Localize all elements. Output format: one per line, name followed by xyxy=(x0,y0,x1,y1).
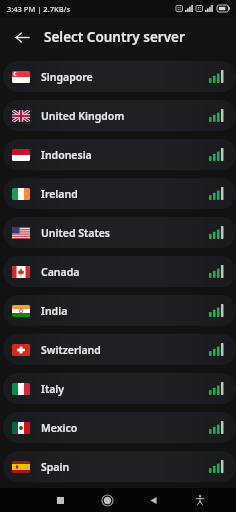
staticText: Ireland xyxy=(41,187,78,201)
button[interactable]: Spain xyxy=(3,451,236,482)
staticText: 3:43 PM | 2.7KB/s xyxy=(7,4,71,14)
button[interactable]: Accessibility xyxy=(190,490,210,510)
button[interactable]: Indonesia xyxy=(3,139,236,170)
staticText: Mexico xyxy=(41,421,78,435)
button[interactable]: Home xyxy=(97,490,117,510)
button[interactable]: Back xyxy=(8,23,36,51)
staticText: United Kingdom xyxy=(41,109,125,123)
button[interactable]: Canada xyxy=(3,256,236,287)
staticText: United States xyxy=(41,226,110,240)
button[interactable]: Switzerland xyxy=(3,334,236,365)
button[interactable]: Recents xyxy=(50,490,70,510)
button[interactable]: Back xyxy=(143,490,163,510)
staticText: Indonesia xyxy=(41,148,92,162)
staticText: Canada xyxy=(41,265,80,279)
button[interactable]: Mexico xyxy=(3,412,236,443)
staticText: Select Country server xyxy=(44,28,185,46)
staticText: Singapore xyxy=(41,70,93,84)
button[interactable]: United Kingdom xyxy=(3,100,236,131)
button[interactable]: United States xyxy=(3,217,236,248)
button[interactable]: Italy xyxy=(3,373,236,404)
staticText: Switzerland xyxy=(41,343,101,357)
staticText: India xyxy=(41,304,68,318)
staticText: Italy xyxy=(41,382,65,396)
button[interactable]: Singapore xyxy=(3,61,236,92)
button[interactable]: Ireland xyxy=(3,178,236,209)
staticText: Spain xyxy=(41,460,70,474)
button[interactable]: India xyxy=(3,295,236,326)
